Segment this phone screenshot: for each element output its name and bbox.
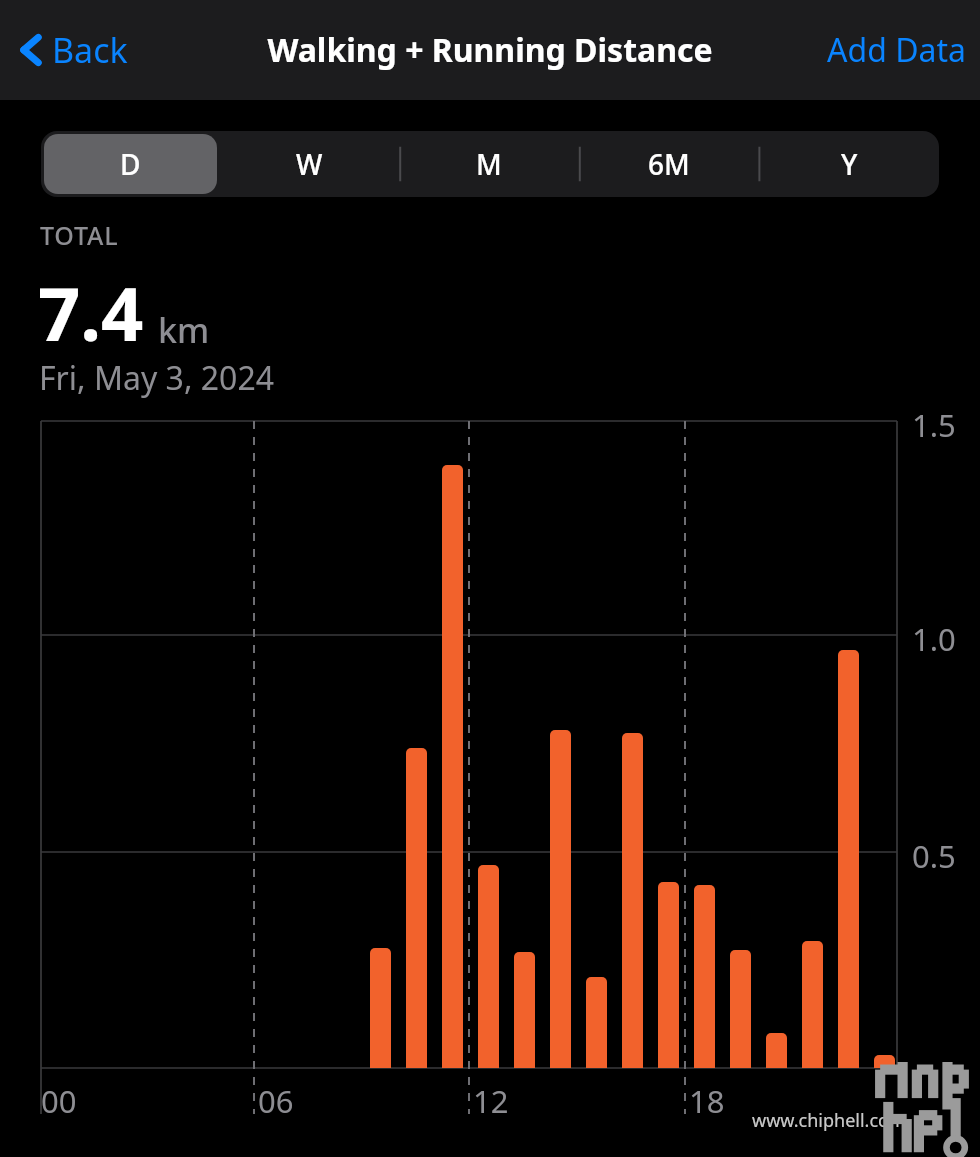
staticText: M [476,145,502,183]
button[interactable]: Y [762,134,936,194]
staticText: 06 [258,1080,294,1122]
staticText: km [158,307,210,353]
staticText: Walking + Running Distance [267,28,713,72]
staticText: 6M [648,145,690,183]
staticText: Fri, May 3, 2024 [39,356,275,400]
button[interactable]: 6M [582,134,756,194]
button[interactable]: D [44,134,217,194]
button[interactable]: W [223,134,396,194]
staticText: W [296,145,323,183]
staticText: Add Data [827,28,966,72]
staticText: 0.5 [912,835,956,877]
staticText: 1.0 [912,618,956,660]
staticText: 7.4 [38,262,144,363]
button[interactable]: M [402,134,576,194]
staticText: 1.5 [912,404,956,446]
staticText: D [120,145,141,183]
staticText: 18 [689,1080,725,1122]
staticText: 00 [41,1080,77,1122]
staticText: www.chiphell.com [752,1108,906,1133]
staticText: Y [841,145,858,183]
staticText: 12 [473,1080,509,1122]
button[interactable]: Add Data [819,18,974,82]
button[interactable]: Back [12,17,134,83]
staticText: Back [52,27,128,73]
staticText: TOTAL [40,218,119,252]
